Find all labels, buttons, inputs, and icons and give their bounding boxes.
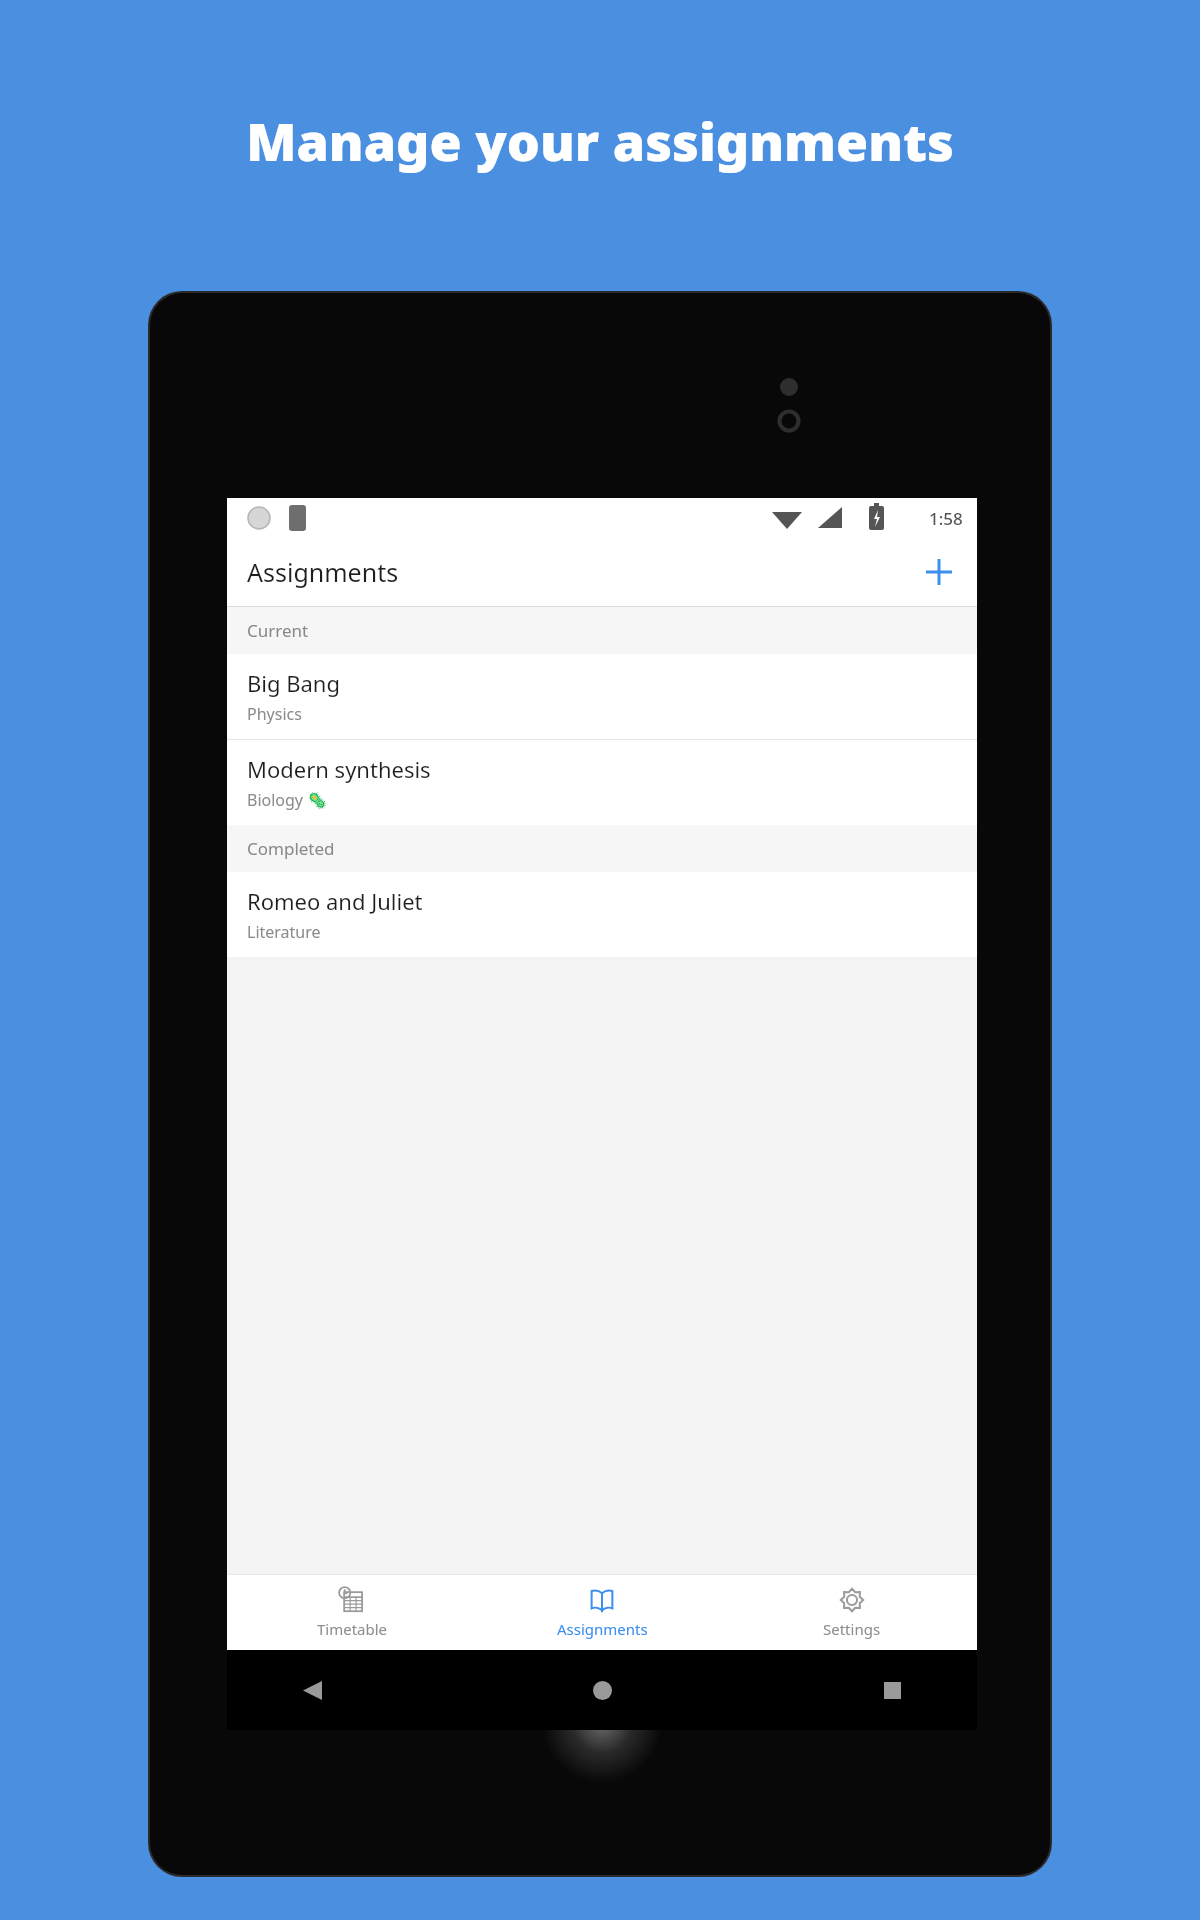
button[interactable]: Assignments <box>477 1574 727 1650</box>
staticText: Settings <box>823 1619 881 1639</box>
button[interactable]: Romeo and Juliet <box>227 872 977 957</box>
staticText: Modern synthesis <box>247 754 431 784</box>
button[interactable]: Timetable <box>227 1574 477 1650</box>
button[interactable]: Big Bang <box>227 654 977 739</box>
staticText: Big Bang <box>247 668 340 698</box>
button[interactable]: Back <box>289 1667 335 1713</box>
staticText: Biology 🦠 <box>247 789 328 811</box>
staticText: Current <box>247 619 309 642</box>
staticText: 1:58 <box>929 507 963 530</box>
button[interactable]: Modern synthesis <box>227 740 977 825</box>
staticText: Manage your assignments <box>246 105 954 176</box>
staticText: Completed <box>247 837 335 860</box>
staticText: Assignments <box>247 555 399 589</box>
staticText: Timetable <box>317 1619 388 1639</box>
staticText: Romeo and Juliet <box>247 886 423 916</box>
staticText: Physics <box>247 703 302 725</box>
button[interactable]: Settings <box>727 1574 977 1650</box>
button[interactable]: Home <box>579 1667 625 1713</box>
button[interactable]: Recent apps <box>869 1667 915 1713</box>
staticText: Assignments <box>557 1619 648 1639</box>
staticText: Literature <box>247 921 321 943</box>
button[interactable]: Add assignment <box>913 546 965 598</box>
